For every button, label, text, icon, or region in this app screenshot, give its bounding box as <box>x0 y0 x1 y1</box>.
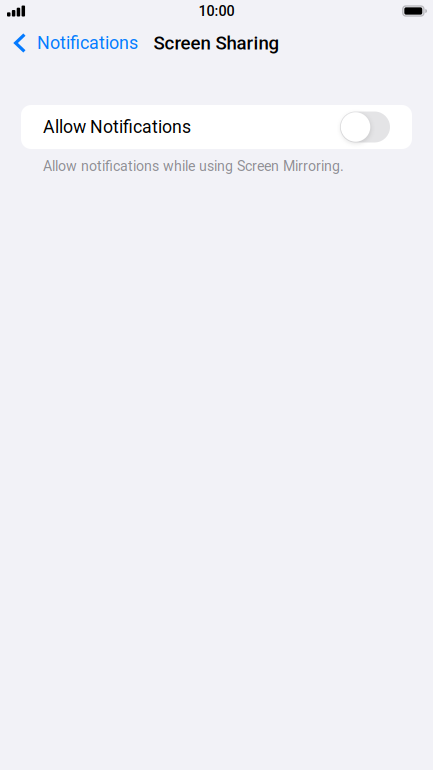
staticText: 10:00 <box>198 3 234 19</box>
staticText: Notifications <box>37 32 138 53</box>
staticText: Allow Notifications <box>43 117 191 137</box>
button[interactable]: Back to Notifications <box>0 27 138 58</box>
staticText: Screen Sharing <box>153 32 279 54</box>
staticText: Allow notifications while using Screen M… <box>43 158 344 175</box>
button[interactable]: Allow Notifications <box>21 105 412 149</box>
